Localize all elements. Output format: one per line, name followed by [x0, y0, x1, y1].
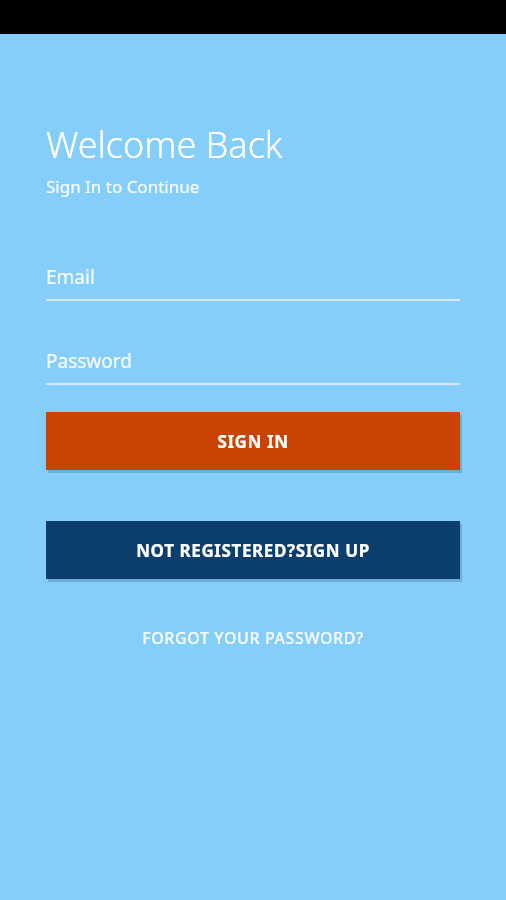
- button[interactable]: NOT REGISTERED?SIGN UP: [46, 521, 460, 579]
- staticText: Password: [46, 348, 132, 374]
- button[interactable]: Password: [46, 345, 460, 385]
- button[interactable]: Email: [46, 261, 460, 301]
- button[interactable]: FORGOT YOUR PASSWORD?: [46, 621, 460, 655]
- staticText: Sign In to Continue: [46, 175, 200, 198]
- staticText: SIGN IN: [217, 430, 289, 453]
- button[interactable]: SIGN IN: [46, 412, 460, 470]
- staticText: Email: [46, 264, 95, 290]
- staticText: NOT REGISTERED?SIGN UP: [136, 539, 370, 562]
- staticText: FORGOT YOUR PASSWORD?: [142, 627, 364, 649]
- staticText: Welcome Back: [46, 120, 283, 169]
